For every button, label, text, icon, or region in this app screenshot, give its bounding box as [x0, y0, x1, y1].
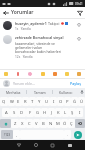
button[interactable]: W — [8, 97, 15, 106]
button[interactable]: H — [41, 108, 48, 117]
button[interactable]: N — [47, 119, 54, 128]
button[interactable]: Ş — [69, 108, 76, 117]
button[interactable]: B — [40, 119, 47, 128]
button[interactable]: L — [62, 108, 69, 117]
button[interactable]: J — [48, 108, 55, 117]
button[interactable]: Ü — [78, 97, 85, 106]
button[interactable]: I — [76, 108, 83, 117]
button[interactable]: Son uygulamalar — [44, 140, 61, 150]
button[interactable]: Emoji — [64, 71, 70, 77]
staticText: Q — [2, 99, 6, 105]
button[interactable]: Geri — [0, 7, 11, 18]
button[interactable]: D — [18, 108, 26, 117]
staticText: Yorumlar — [11, 9, 34, 16]
button[interactable]: Geri sil — [75, 119, 85, 128]
staticText: Z — [14, 121, 17, 127]
staticText: M — [56, 121, 60, 127]
button[interactable]: T — [29, 97, 36, 106]
button[interactable]: Q — [0, 97, 8, 106]
button[interactable]: Emoji — [76, 71, 82, 77]
staticText: Ü — [80, 99, 84, 105]
button[interactable]: G — [34, 108, 41, 117]
staticText: 12s Yanıtla — [15, 55, 33, 59]
button[interactable]: Geri — [10, 140, 27, 150]
button[interactable]: Yorum ekle... — [13, 81, 69, 86]
button[interactable]: Shift — [0, 119, 11, 128]
button[interactable]: ?123 — [1, 130, 13, 139]
staticText: J — [51, 110, 53, 116]
button[interactable]: Emoji — [52, 71, 58, 77]
staticText: P — [66, 99, 69, 105]
button[interactable]: huseyin_aydemir1 — [0, 19, 85, 33]
staticText: Kullanıcı — [59, 90, 73, 95]
button[interactable]: Ö — [61, 119, 68, 128]
button[interactable]: Emoji — [15, 71, 21, 77]
staticText: Ğ — [73, 99, 77, 105]
button[interactable]: P — [64, 97, 71, 106]
staticText: I — [53, 99, 55, 105]
button[interactable]: M — [54, 119, 61, 128]
staticText: B — [42, 121, 45, 127]
button[interactable]: . — [64, 130, 71, 139]
staticText: Paylaş — [70, 81, 81, 86]
button[interactable]: zehirzade Borsahocal sinyal — [0, 33, 85, 61]
button[interactable]: C — [26, 119, 33, 128]
staticText: E — [17, 99, 20, 105]
staticText: A — [5, 110, 8, 116]
staticText: N — [49, 121, 53, 127]
button[interactable]: K — [55, 108, 62, 117]
staticText: , — [16, 132, 17, 137]
button[interactable]: Emoji — [40, 71, 46, 77]
button[interactable]: Klavye — [61, 140, 78, 150]
button[interactable]: Paylaş — [69, 81, 82, 86]
button[interactable]: V — [33, 119, 40, 128]
button[interactable]: Y — [36, 97, 43, 106]
staticText: 1s Yanıtla — [15, 27, 31, 31]
staticText: ?123 — [4, 133, 11, 137]
button[interactable]: Emoji — [3, 71, 9, 77]
staticText: Merhaba — [6, 90, 21, 95]
staticText: U — [45, 99, 49, 105]
button[interactable]: Ana ekran — [27, 140, 44, 150]
button[interactable]: Merhaba — [0, 88, 26, 96]
button[interactable]: Emoji — [27, 71, 33, 77]
staticText: X — [21, 121, 24, 127]
button[interactable]: Tamam — [27, 88, 52, 96]
staticText: Takipci — [48, 21, 60, 26]
staticText: 09:41 — [75, 2, 83, 6]
button[interactable]: R — [22, 97, 29, 106]
staticText: H — [43, 110, 47, 116]
button[interactable]: U — [43, 97, 50, 106]
button[interactable]: Mikrofon — [78, 88, 85, 96]
staticText: T — [31, 99, 34, 105]
staticText: F — [29, 110, 32, 116]
button[interactable]: A — [2, 108, 10, 117]
staticText: I — [79, 110, 81, 116]
staticText: V — [35, 121, 38, 127]
staticText: Ş — [71, 110, 74, 116]
staticText: K — [57, 110, 60, 116]
staticText: zehirzade Borsahocal sinyal — [15, 35, 64, 40]
button[interactable]: S — [10, 108, 18, 117]
button[interactable]: F — [26, 108, 34, 117]
button[interactable]: O — [57, 97, 64, 106]
staticText: Ç — [70, 121, 73, 127]
staticText: Tamam — [34, 90, 46, 95]
staticText: Yorum ekle... — [13, 81, 35, 86]
button[interactable]: Z — [11, 119, 19, 128]
button[interactable]: X — [19, 119, 26, 128]
button[interactable]: I — [50, 97, 57, 106]
staticText: huseyin_aydemir1 — [15, 21, 47, 26]
staticText: S — [13, 110, 16, 116]
button[interactable]: Paylaş — [74, 7, 85, 18]
button[interactable]: , — [13, 130, 20, 139]
button[interactable]: Kullanıcı — [53, 88, 78, 96]
button[interactable]: Beğen — [75, 21, 82, 28]
button[interactable]: Ğ — [71, 97, 78, 106]
button[interactable]: Gönder — [74, 131, 82, 139]
button[interactable]: E — [15, 97, 22, 106]
staticText: C — [28, 121, 31, 127]
button[interactable]: Ç — [68, 119, 75, 128]
button[interactable]: Beğen — [75, 35, 82, 42]
